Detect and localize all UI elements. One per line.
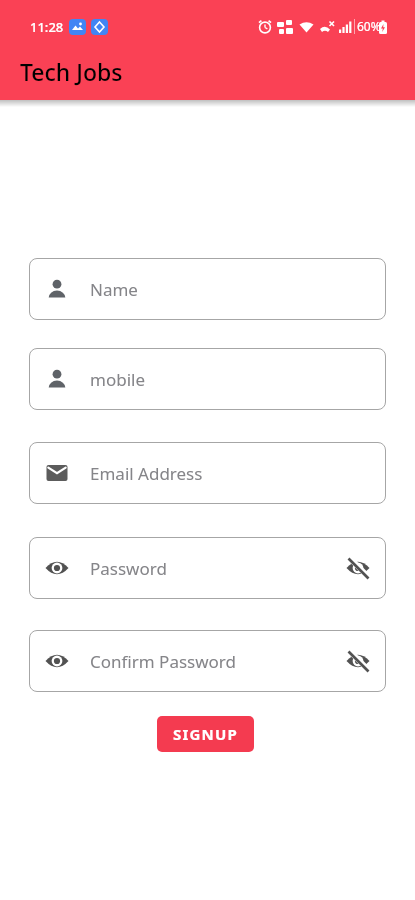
button[interactable]: mobile: [29, 348, 386, 410]
staticText: SIGNUP: [173, 724, 239, 744]
staticText: Tech Jobs: [20, 56, 123, 87]
button[interactable]: Confirm Password: [29, 630, 386, 692]
button[interactable]: Email Address: [29, 442, 386, 504]
button[interactable]: Password: [29, 537, 386, 599]
button[interactable]: SIGNUP: [157, 716, 254, 752]
staticText: Name: [90, 278, 138, 301]
button[interactable]: Name: [29, 258, 386, 320]
staticText: mobile: [90, 368, 145, 391]
staticText: Email Address: [90, 462, 203, 485]
staticText: Confirm Password: [90, 650, 236, 673]
staticText: Password: [90, 557, 167, 580]
staticText: 60%: [357, 18, 381, 34]
staticText: 11:28: [30, 18, 64, 36]
